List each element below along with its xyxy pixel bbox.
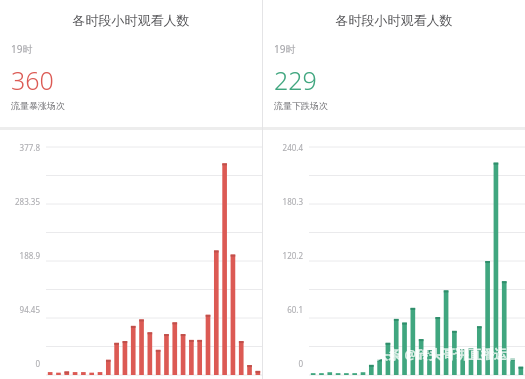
- button[interactable]: 各时段小时观看人数: [0, 0, 262, 127]
- staticText: 180.3: [282, 196, 303, 207]
- staticText: 流量暴涨场次: [11, 100, 65, 111]
- staticText: 0: [298, 358, 303, 369]
- staticText: 188.9: [19, 250, 40, 261]
- staticText: 头条 @砖头哥讲直播运营: [375, 345, 521, 363]
- staticText: 各时段小时观看人数: [0, 12, 262, 28]
- button[interactable]: 各时段小时观看人数: [263, 0, 525, 127]
- staticText: 60.1: [287, 304, 303, 315]
- staticText: 229: [274, 63, 317, 97]
- staticText: 0: [35, 358, 40, 369]
- staticText: 377.8: [19, 142, 40, 153]
- staticText: 240.4: [282, 142, 303, 153]
- staticText: 360: [11, 63, 54, 97]
- staticText: 流量下跌场次: [274, 100, 328, 111]
- staticText: 120.2: [282, 250, 303, 261]
- staticText: 94.45: [19, 304, 40, 315]
- staticText: 283.35: [14, 196, 40, 207]
- staticText: 各时段小时观看人数: [263, 12, 525, 28]
- staticText: 19时: [274, 42, 296, 56]
- staticText: 19时: [11, 42, 33, 56]
